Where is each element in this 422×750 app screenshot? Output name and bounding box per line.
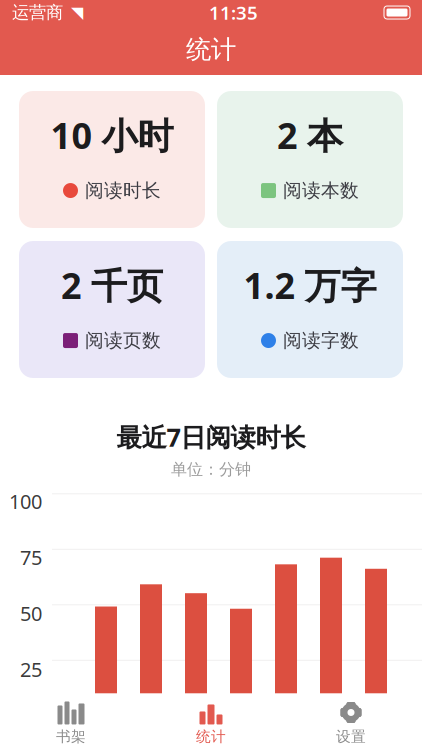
staticText: 书架 [56,727,86,745]
staticText: 阅读本数 [283,179,359,202]
staticText: 阅读时长 [85,179,161,202]
staticText: 统计 [196,727,226,745]
button[interactable]: 设置 [281,697,421,749]
staticText: ◥ [71,3,83,22]
staticText: 25 [20,656,42,683]
staticText: 100 [9,488,42,515]
staticText: 运营商 [12,2,63,23]
staticText: 75 [20,544,42,571]
button[interactable]: 10 小时 [19,91,205,228]
staticText: 50 [20,600,42,627]
staticText: 2 千页 [61,261,163,309]
staticText: 10 小时 [50,111,173,159]
staticText: 11:35 [209,0,258,25]
button[interactable]: 统计 [141,697,281,749]
staticText: 1.2 万字 [243,261,376,309]
staticText: 阅读页数 [85,329,161,352]
staticText: 设置 [336,727,366,745]
staticText: 统计 [186,34,236,65]
staticText: 单位：分钟 [171,460,251,479]
button[interactable]: 2 本 [217,91,403,228]
staticText: 2 本 [277,111,343,159]
staticText: 最近7日阅读时长 [116,420,305,454]
button[interactable]: 2 千页 [19,241,205,378]
button[interactable]: 书架 [1,697,141,749]
button[interactable]: 1.2 万字 [217,241,403,378]
staticText: 阅读字数 [283,329,359,352]
